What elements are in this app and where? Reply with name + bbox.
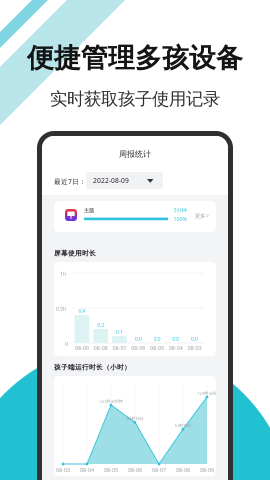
staticText: 孩子端运行时长（小时） <box>54 363 131 371</box>
staticText: 08-05 <box>150 344 164 352</box>
staticText: 08-08 <box>94 344 108 352</box>
staticText: 08-04 <box>169 344 183 352</box>
staticText: 08-03 <box>56 466 70 474</box>
staticText: 08-06 <box>131 344 145 352</box>
staticText: 0.4 <box>78 307 85 314</box>
staticText: 更多 > <box>195 212 209 219</box>
staticText: 08-06 <box>128 466 142 474</box>
staticText: 便捷管理多孩设备 <box>27 41 243 75</box>
staticText: 6.3时12分 <box>174 422 191 428</box>
staticText: 0 <box>65 340 68 347</box>
staticText: 12.8时32分 <box>197 390 216 396</box>
staticText: 08-03 <box>188 344 202 352</box>
button[interactable]: 主题 <box>54 201 216 232</box>
staticText: 最近7日： <box>54 177 86 186</box>
staticText: 0.2 <box>97 321 104 328</box>
staticText: 0.0 <box>135 335 142 342</box>
staticText: 08-07 <box>152 466 166 474</box>
staticText: 0.1 <box>116 328 123 335</box>
staticText: 0.0 <box>172 335 179 342</box>
staticText: 实时获取孩子使用记录 <box>50 88 220 110</box>
staticText: 08-04 <box>80 466 94 474</box>
staticText: 周报统计 <box>119 149 151 159</box>
staticText: 08-05 <box>104 466 118 474</box>
staticText: 0.0 <box>191 335 198 342</box>
staticText: 08-08 <box>176 466 190 474</box>
staticText: 1h <box>60 270 66 277</box>
staticText: 08-09 <box>75 344 89 352</box>
staticText: 2022-08-09 <box>93 176 129 185</box>
staticText: 0.5h <box>56 305 66 312</box>
staticText: 12.5时32分钟 <box>99 398 122 404</box>
staticText: 100% <box>173 215 186 223</box>
staticText: 主题 <box>84 207 94 214</box>
staticText: 3分钟 <box>173 206 186 214</box>
staticText: 08-09 <box>200 466 214 474</box>
staticText: 8.6时12分 <box>126 416 143 421</box>
staticText: 屏幕使用时长 <box>54 249 96 257</box>
staticText: 08-07 <box>112 344 126 352</box>
button[interactable]: 2022-08-09 <box>86 172 163 189</box>
staticText: 0.0 <box>153 335 160 342</box>
